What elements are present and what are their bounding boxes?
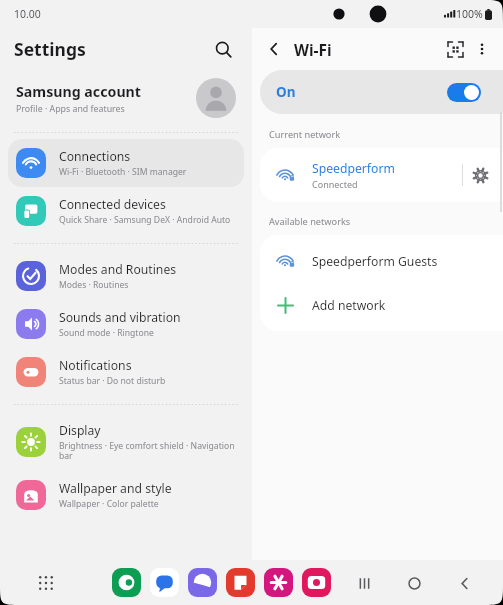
staticText: Modes and Routines <box>59 261 177 278</box>
staticText: Display <box>59 422 101 439</box>
staticText: 100% <box>456 7 483 21</box>
staticText: Samsung account <box>16 82 141 101</box>
staticText: Connected <box>312 178 358 190</box>
button[interactable]: On <box>260 70 503 114</box>
staticText: Profile · Apps and features <box>16 103 125 115</box>
button[interactable]: Home <box>401 570 427 596</box>
staticText: Current network <box>269 128 341 141</box>
staticText: Connections <box>59 148 131 165</box>
button[interactable]: Display <box>8 413 244 471</box>
button[interactable]: Back <box>451 570 477 596</box>
staticText: Speedperform Guests <box>312 253 438 270</box>
staticText: Settings <box>14 37 86 61</box>
button[interactable]: Apps <box>32 569 60 597</box>
button[interactable]: Connected devices <box>8 187 244 235</box>
staticText: Sounds and vibration <box>59 309 181 326</box>
button[interactable]: Connections <box>8 139 244 187</box>
staticText: Sound mode · Ringtone <box>59 327 154 339</box>
button[interactable]: Add network <box>260 283 503 327</box>
button[interactable]: Gallery <box>264 568 293 597</box>
button[interactable]: Phone <box>112 568 141 597</box>
button[interactable]: Search <box>208 34 238 64</box>
staticText: Add network <box>312 297 386 314</box>
button[interactable]: Speedperform <box>260 148 503 202</box>
staticText: Wi-Fi <box>294 39 332 60</box>
staticText: Wallpaper · Color palette <box>59 498 159 510</box>
staticText: 10.00 <box>14 7 41 21</box>
button[interactable]: Recents <box>351 570 377 596</box>
staticText: On <box>276 83 296 101</box>
button[interactable]: Samsung account <box>0 70 252 126</box>
button[interactable]: Camera <box>302 568 331 597</box>
button[interactable]: Samsung Notes <box>226 568 255 597</box>
staticText: Notifications <box>59 357 132 374</box>
button[interactable]: Messages <box>150 568 179 597</box>
staticText: Wi-Fi · Bluetooth · SIM manager <box>59 166 187 178</box>
staticText: Modes · Routines <box>59 279 129 291</box>
button[interactable]: Scan QR code <box>441 35 469 63</box>
staticText: Brightness · Eye comfort shield · Naviga… <box>59 440 236 462</box>
staticText: Wallpaper and style <box>59 480 172 497</box>
button[interactable]: Internet <box>188 568 217 597</box>
staticText: Status bar · Do not disturb <box>59 375 166 387</box>
button[interactable]: Wallpaper and style <box>8 471 244 519</box>
staticText: Quick Share · Samsung DeX · Android Auto <box>59 214 231 226</box>
button[interactable]: Notifications <box>8 348 244 396</box>
button[interactable]: Modes and Routines <box>8 252 244 300</box>
button[interactable]: Sounds and vibration <box>8 300 244 348</box>
button[interactable]: Back <box>260 35 288 63</box>
staticText: Available networks <box>269 215 351 228</box>
staticText: Connected devices <box>59 196 166 213</box>
button[interactable]: Network settings <box>463 158 497 192</box>
staticText: Speedperform <box>312 160 395 177</box>
button[interactable]: Speedperform Guests <box>260 239 503 283</box>
button[interactable]: More options <box>469 36 495 62</box>
